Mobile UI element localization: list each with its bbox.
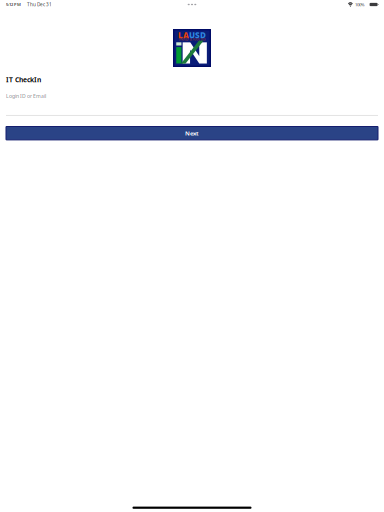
staticText: 100% bbox=[355, 2, 365, 7]
staticText: Next bbox=[185, 129, 199, 137]
staticText: UNIFIED SCHOOL DIST bbox=[178, 38, 205, 41]
staticText: Thu Dec 31 bbox=[27, 1, 52, 8]
button[interactable]: Login ID or Email bbox=[6, 84, 378, 116]
staticText: LA bbox=[178, 30, 189, 41]
staticText: Login ID or Email bbox=[6, 93, 46, 99]
staticText: USD bbox=[189, 30, 206, 41]
staticText: IT CheckIn bbox=[6, 75, 41, 84]
staticText: 5:12 PM bbox=[6, 2, 21, 7]
button[interactable]: Next bbox=[6, 126, 378, 140]
